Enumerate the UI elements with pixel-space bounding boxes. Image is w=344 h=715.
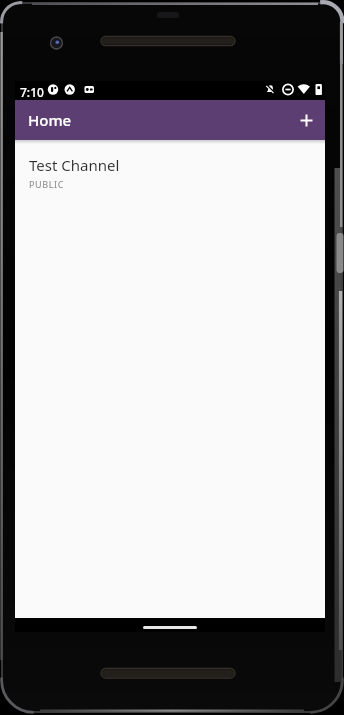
button[interactable]: Test Channel bbox=[15, 140, 325, 190]
staticText: Test Channel bbox=[29, 155, 120, 175]
staticText: PUBLIC bbox=[29, 178, 64, 190]
staticText: 7:10 bbox=[20, 84, 44, 100]
button[interactable] bbox=[293, 107, 320, 134]
staticText: Home bbox=[28, 110, 72, 130]
